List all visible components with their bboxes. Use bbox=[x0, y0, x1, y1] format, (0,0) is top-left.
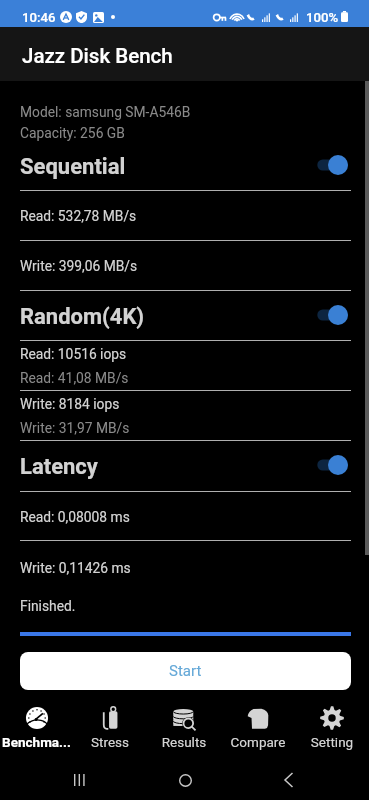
staticText: Start bbox=[169, 662, 202, 680]
staticText: Write: 8184 iops bbox=[20, 396, 120, 412]
staticText: Random(4K) bbox=[20, 304, 145, 330]
staticText: Capacity: 256 GB bbox=[20, 125, 125, 141]
button[interactable]: Compare bbox=[221, 698, 295, 752]
button[interactable]: Benchma... bbox=[0, 698, 73, 752]
button[interactable]: Toggle bbox=[315, 303, 351, 327]
staticText: Sequential bbox=[20, 154, 126, 180]
staticText: Read: 41,08 MB/s bbox=[20, 370, 129, 386]
button[interactable] bbox=[0, 144, 369, 188]
button[interactable]: Start bbox=[20, 652, 351, 690]
button[interactable]: Toggle bbox=[315, 153, 351, 177]
staticText: Write: 0,11426 ms bbox=[20, 560, 131, 576]
staticText: 100% bbox=[306, 10, 339, 25]
staticText: Latency bbox=[20, 454, 98, 480]
button[interactable]: Setting bbox=[295, 698, 369, 752]
staticText: Jazz Disk Bench bbox=[22, 44, 173, 68]
staticText: Benchma... bbox=[0, 734, 73, 750]
button[interactable] bbox=[0, 444, 369, 488]
button[interactable]: Back bbox=[265, 760, 313, 800]
button[interactable]: Recents bbox=[56, 760, 104, 800]
staticText: Setting bbox=[295, 734, 369, 750]
staticText: Read: 532,78 MB/s bbox=[20, 208, 137, 224]
staticText: Results bbox=[147, 734, 221, 750]
staticText: Read: 10516 iops bbox=[20, 346, 127, 362]
staticText: Model: samsung SM-A546B bbox=[20, 104, 191, 120]
staticText: Finished. bbox=[20, 598, 76, 614]
staticText: Read: 0,08008 ms bbox=[20, 509, 130, 525]
staticText: Write: 31,97 MB/s bbox=[20, 420, 130, 436]
button[interactable]: Toggle bbox=[315, 453, 351, 477]
button[interactable]: Home bbox=[161, 760, 209, 800]
button[interactable]: Stress bbox=[73, 698, 147, 752]
button[interactable] bbox=[0, 294, 369, 338]
staticText: Stress bbox=[73, 734, 147, 750]
staticText: Compare bbox=[221, 734, 295, 750]
staticText: Write: 399,06 MB/s bbox=[20, 258, 138, 274]
staticText: 10:46 bbox=[22, 10, 56, 25]
button[interactable]: Results bbox=[147, 698, 221, 752]
